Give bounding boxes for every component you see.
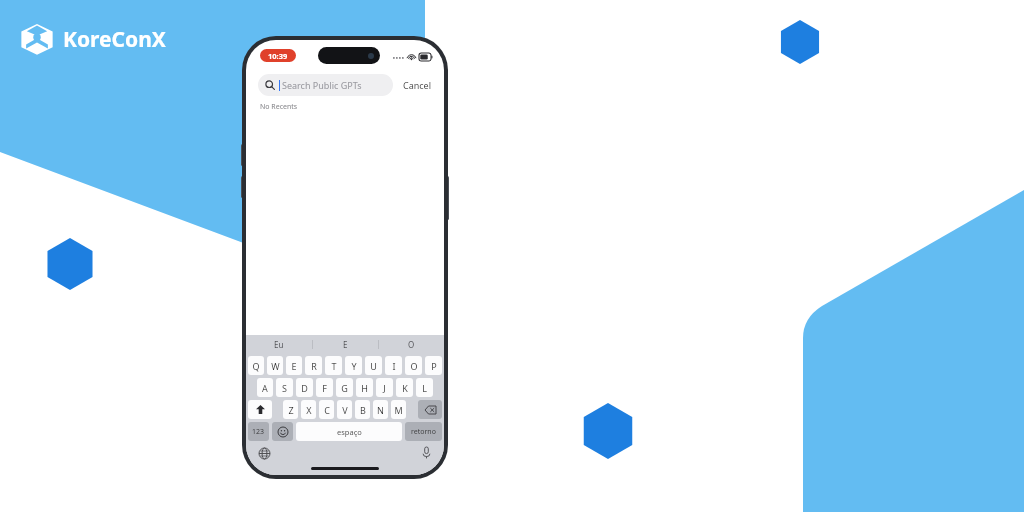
staticText: No Recents [260,102,298,112]
staticText: espaço [337,427,362,437]
button[interactable]: P [425,356,442,375]
staticText: Search Public GPTs [282,79,362,91]
staticText: Y [351,360,357,372]
staticText: A [262,382,268,394]
button[interactable]: Search Public GPTs [258,74,393,96]
button[interactable]: Z [283,400,298,419]
button[interactable]: F [316,378,333,397]
staticText: 123 [252,427,265,437]
button[interactable]: D [296,378,313,397]
staticText: R [311,360,317,372]
button[interactable]: Q [248,356,264,375]
staticText: E [291,360,297,372]
button[interactable]: S [276,378,293,397]
button[interactable]: X [301,400,316,419]
staticText: S [282,382,287,394]
staticText: Q [252,360,260,372]
button[interactable]: C [319,400,334,419]
staticText: 10:39 [268,51,288,61]
button[interactable]: Backspace [418,400,442,419]
staticText: P [431,360,437,372]
button[interactable]: Y [345,356,362,375]
staticText: X [306,404,312,416]
staticText: T [331,360,337,372]
button[interactable]: O [379,335,444,354]
button[interactable]: A [257,378,273,397]
button[interactable]: N [373,400,388,419]
button[interactable]: 123 [248,422,269,441]
staticText: Eu [274,339,284,350]
button[interactable]: V [337,400,352,419]
button[interactable]: L [416,378,433,397]
button[interactable]: M [391,400,406,419]
staticText: E [343,339,348,350]
staticText: H [361,382,368,394]
staticText: M [394,404,403,416]
button[interactable]: E [286,356,302,375]
staticText: J [383,382,386,394]
staticText: Cancel [403,79,432,91]
button[interactable]: K [396,378,413,397]
staticText: D [301,382,308,394]
staticText: V [342,404,348,416]
button[interactable]: O [405,356,422,375]
staticText: G [341,382,348,394]
button[interactable]: U [365,356,382,375]
staticText: K [402,382,408,394]
staticText: N [377,404,384,416]
staticText: U [370,360,377,372]
staticText: retorno [411,427,436,437]
staticText: C [324,404,330,416]
button[interactable]: W [267,356,283,375]
staticText: KoreConX [63,25,166,54]
button[interactable]: Dictation [418,445,434,461]
button[interactable]: KoreConX [20,22,166,56]
button[interactable]: Eu [246,335,312,354]
button[interactable]: Change keyboard language [256,445,272,461]
button[interactable]: E [313,335,378,354]
button[interactable]: H [356,378,373,397]
button[interactable]: I [385,356,402,375]
staticText: B [360,404,366,416]
staticText: O [408,339,415,350]
button[interactable]: T [325,356,342,375]
button[interactable]: J [376,378,393,397]
staticText: F [322,382,327,394]
staticText: L [422,382,427,394]
staticText: O [410,360,418,372]
staticText: I [392,360,396,372]
staticText: W [271,360,280,372]
button[interactable]: espaço [296,422,402,441]
button[interactable]: Cancel [401,75,434,95]
button[interactable]: Shift [248,400,272,419]
button[interactable]: R [305,356,322,375]
button[interactable]: 10:39 [260,49,296,62]
button[interactable]: retorno [405,422,442,441]
staticText: Z [288,404,294,416]
button[interactable]: Emoji [272,422,293,441]
button[interactable]: G [336,378,353,397]
button[interactable]: B [355,400,370,419]
